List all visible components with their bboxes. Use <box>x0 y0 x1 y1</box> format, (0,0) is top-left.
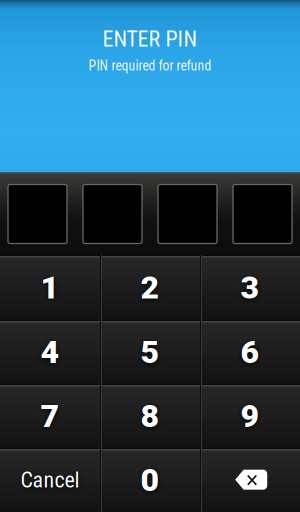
button[interactable]: 9 <box>200 384 300 448</box>
button[interactable]: 8 <box>100 384 200 448</box>
button[interactable]: 5 <box>100 320 200 384</box>
staticText: 0 <box>140 461 159 499</box>
staticText: 7 <box>40 397 59 435</box>
button[interactable]: 1 <box>0 255 100 320</box>
button[interactable]: Delete <box>200 448 300 512</box>
staticText: 2 <box>140 269 159 306</box>
button[interactable]: Cancel <box>0 448 100 512</box>
staticText: 9 <box>240 397 259 435</box>
button[interactable]: 0 <box>100 448 200 512</box>
staticText: 5 <box>140 333 159 371</box>
button[interactable]: 2 <box>100 255 200 320</box>
staticText: 8 <box>140 397 159 435</box>
staticText: PIN required for refund <box>88 58 211 74</box>
button[interactable]: 6 <box>200 320 300 384</box>
staticText: 3 <box>240 269 259 306</box>
staticText: 1 <box>40 269 59 306</box>
staticText: 4 <box>40 333 59 371</box>
button[interactable]: 4 <box>0 320 100 384</box>
button[interactable]: 7 <box>0 384 100 448</box>
button[interactable]: 3 <box>200 255 300 320</box>
staticText: ENTER PIN <box>102 26 197 52</box>
staticText: 6 <box>240 333 259 371</box>
staticText: Cancel <box>20 467 79 493</box>
